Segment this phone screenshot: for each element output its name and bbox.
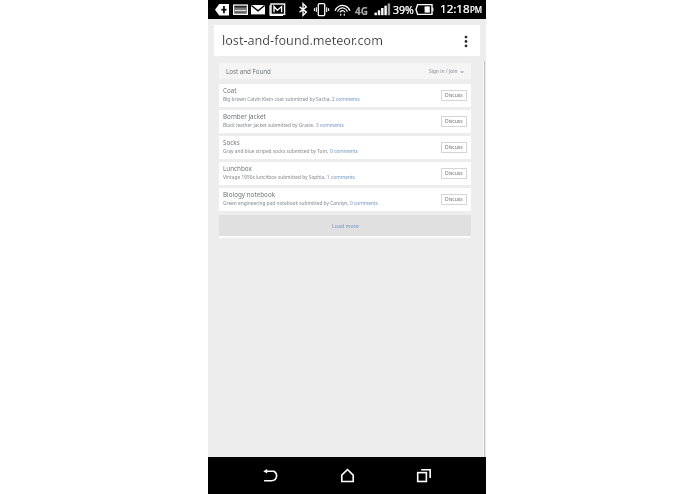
staticText: Vintage 1950s lunchbox submitted by Soph…	[223, 174, 331, 181]
button[interactable]: Back	[250, 458, 290, 492]
button[interactable]: Discuss	[441, 168, 467, 179]
button[interactable]: Discuss	[441, 142, 467, 153]
staticText: 0 comments	[330, 148, 358, 155]
staticText: Discuss	[445, 92, 463, 99]
staticText: comments	[331, 174, 355, 181]
staticText: Coat	[223, 86, 237, 95]
staticText: Lost and Found	[226, 67, 271, 75]
staticText: Biology notebook	[223, 190, 276, 199]
staticText: Sign in / Join	[429, 68, 458, 75]
staticText: Black leather jacket submitted by Gracie…	[223, 122, 316, 129]
button[interactable]: Load more	[219, 215, 471, 236]
staticText: Discuss	[445, 144, 463, 151]
staticText: 2 comments	[332, 96, 360, 103]
staticText: 3 comments	[316, 122, 344, 129]
staticText: lost-and-found.meteor.com	[222, 32, 383, 49]
staticText: PM	[470, 4, 483, 15]
staticText: Socks	[223, 138, 240, 147]
staticText: 0 comments	[350, 200, 378, 207]
staticText: Lunchbox	[223, 164, 252, 173]
button[interactable]: More options	[456, 31, 476, 51]
staticText: Big brown Calvin Klein coat submitted by…	[223, 96, 332, 103]
staticText: 39%	[393, 3, 414, 17]
button[interactable]: Home	[327, 458, 367, 492]
button[interactable]: Discuss	[441, 90, 467, 101]
button[interactable]: Discuss	[441, 116, 467, 127]
button[interactable]: Socks	[219, 136, 471, 159]
staticText: Gray and blue striped socks submitted by…	[223, 148, 330, 155]
staticText: 12:18	[440, 1, 470, 17]
staticText: Discuss	[445, 196, 463, 203]
staticText: 4G	[355, 4, 368, 18]
button[interactable]: Biology notebook	[219, 188, 471, 211]
staticText: Discuss	[445, 118, 463, 125]
staticText: Bomber jacket	[223, 112, 266, 121]
button[interactable]: lost-and-found.meteor.com	[214, 25, 480, 56]
staticText: Load more	[332, 222, 359, 229]
staticText: Green engineering pad notebook submitted…	[223, 200, 350, 207]
staticText: Discuss	[445, 170, 463, 177]
button[interactable]: Lost and Found	[219, 63, 471, 79]
button[interactable]: Coat	[219, 84, 471, 107]
button[interactable]: Bomber jacket	[219, 110, 471, 133]
button[interactable]: Recent apps	[404, 458, 444, 492]
button[interactable]: Lunchbox	[219, 162, 471, 185]
button[interactable]: Discuss	[441, 194, 467, 205]
